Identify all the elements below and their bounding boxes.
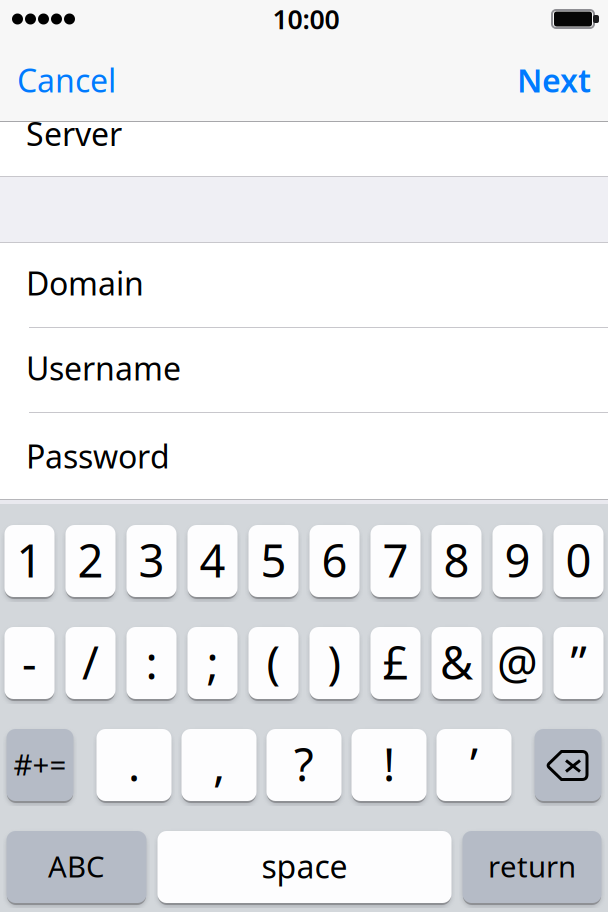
button[interactable]: 0	[553, 524, 603, 598]
button[interactable]: 6	[309, 524, 359, 598]
staticText: space	[261, 845, 347, 887]
staticText: .	[128, 734, 140, 794]
staticText: 6	[321, 530, 347, 590]
staticText: Next	[517, 59, 591, 101]
staticText: Domain	[26, 262, 144, 304]
button[interactable]: 1	[4, 524, 54, 598]
button[interactable]: 8	[431, 524, 481, 598]
button[interactable]: ?	[266, 728, 341, 802]
button[interactable]: Delete	[534, 728, 601, 802]
button[interactable]: ,	[181, 728, 256, 802]
staticText: 10:00	[272, 1, 339, 37]
staticText: /	[82, 632, 99, 692]
button[interactable]: ’	[436, 728, 511, 802]
staticText: @	[497, 632, 538, 692]
button[interactable]: Domain	[0, 243, 608, 327]
staticText: £	[382, 632, 408, 692]
staticText: &	[440, 632, 473, 692]
staticText: 1	[16, 530, 42, 590]
button[interactable]: 3	[126, 524, 176, 598]
button[interactable]: )	[309, 626, 359, 700]
button[interactable]: 5	[248, 524, 298, 598]
staticText: ?	[294, 734, 314, 794]
staticText: 3	[138, 530, 164, 590]
staticText: ,	[213, 734, 225, 794]
staticText: ’	[470, 734, 478, 794]
staticText: 0	[565, 530, 591, 590]
staticText: (	[266, 632, 280, 692]
button[interactable]: &	[431, 626, 481, 700]
button[interactable]: return	[462, 830, 601, 904]
staticText: )	[327, 632, 341, 692]
staticText: 4	[199, 530, 225, 590]
button[interactable]: Server	[0, 91, 608, 176]
button[interactable]: ABC	[6, 830, 146, 904]
button[interactable]: /	[65, 626, 115, 700]
staticText: 7	[382, 530, 408, 590]
button[interactable]: :	[126, 626, 176, 700]
staticText: Password	[26, 435, 170, 477]
button[interactable]: 7	[370, 524, 420, 598]
button[interactable]: ”	[553, 626, 603, 700]
button[interactable]: 4	[187, 524, 237, 598]
button[interactable]: space	[157, 830, 451, 904]
button[interactable]: Username	[0, 328, 608, 412]
staticText: !	[383, 734, 395, 794]
button[interactable]: -	[4, 626, 54, 700]
button[interactable]: .	[96, 728, 171, 802]
button[interactable]: 2	[65, 524, 115, 598]
staticText: ;	[206, 632, 218, 692]
button[interactable]: ;	[187, 626, 237, 700]
staticText: ”	[570, 632, 586, 692]
staticText: -	[22, 632, 37, 692]
staticText: 5	[260, 530, 286, 590]
staticText: 8	[443, 530, 469, 590]
button[interactable]: @	[492, 626, 542, 700]
button[interactable]: £	[370, 626, 420, 700]
staticText: 2	[77, 530, 103, 590]
staticText: Cancel	[17, 59, 116, 101]
button[interactable]: Password	[0, 413, 608, 499]
staticText: :	[145, 632, 157, 692]
button[interactable]: Next	[503, 38, 608, 122]
staticText: return	[488, 846, 576, 885]
button[interactable]: !	[351, 728, 426, 802]
staticText: #+=	[13, 744, 66, 783]
button[interactable]: #+=	[6, 728, 73, 802]
button[interactable]: 9	[492, 524, 542, 598]
staticText: Server	[26, 112, 122, 155]
staticText: 9	[504, 530, 530, 590]
staticText: ABC	[48, 846, 105, 885]
button[interactable]: (	[248, 626, 298, 700]
staticText: Username	[26, 347, 181, 389]
button[interactable]: Cancel	[0, 38, 130, 122]
